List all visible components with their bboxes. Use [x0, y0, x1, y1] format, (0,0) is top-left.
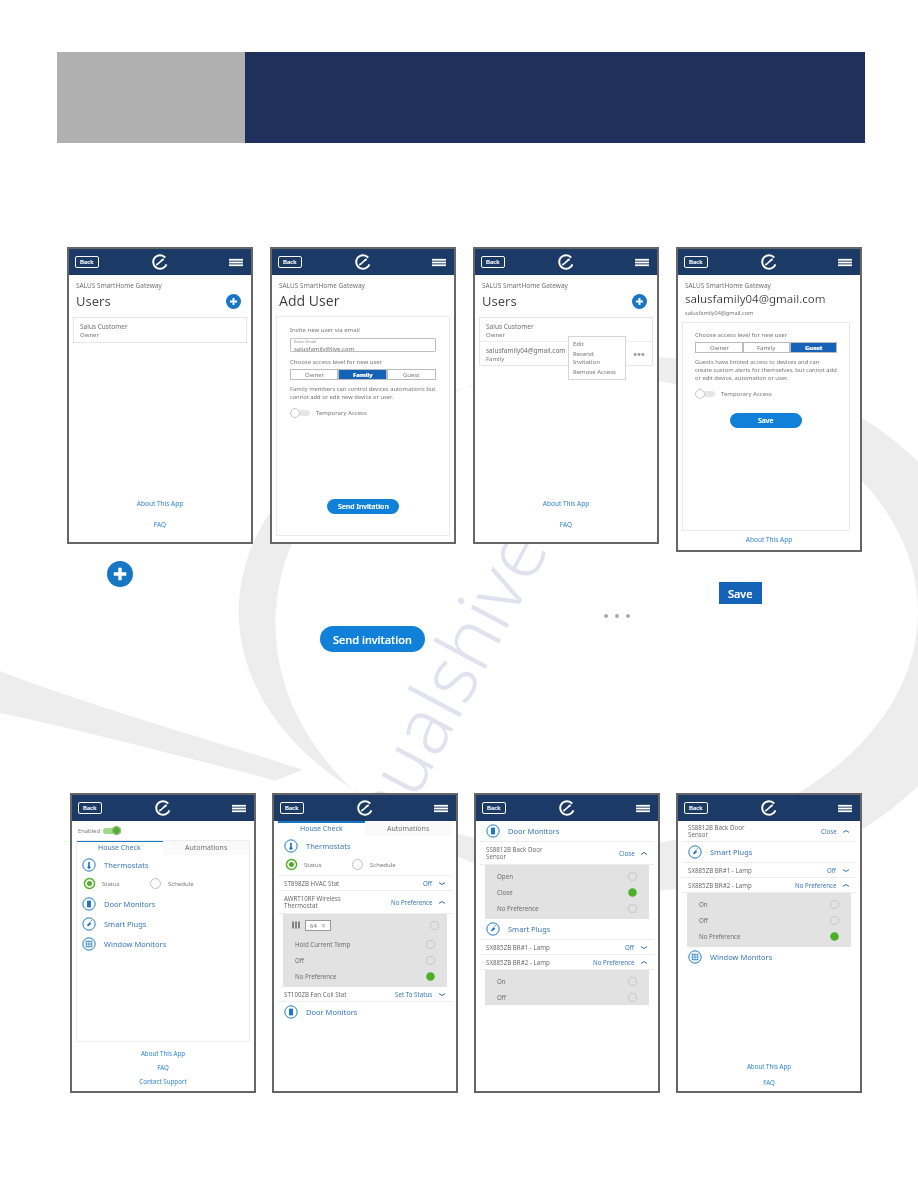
button[interactable]: Automations — [163, 840, 250, 855]
button[interactable]: Add — [107, 561, 133, 587]
button[interactable]: Back — [280, 802, 304, 814]
button[interactable]: Menu — [434, 803, 448, 814]
button[interactable] — [830, 916, 839, 925]
button[interactable]: ST898ZB HVAC Stat — [278, 876, 452, 890]
button[interactable]: Menu — [232, 803, 246, 814]
button[interactable]: Resend Invitation — [573, 349, 621, 367]
button[interactable]: Owner — [695, 342, 743, 353]
button[interactable]: Remove Access — [573, 367, 621, 377]
button[interactable]: House Check — [278, 821, 365, 836]
button[interactable]: SALUS home — [151, 253, 169, 271]
button[interactable] — [426, 956, 435, 965]
button[interactable] — [84, 878, 95, 889]
button[interactable]: About This App — [678, 534, 860, 545]
button[interactable]: House Check — [76, 840, 163, 855]
button[interactable]: Smart Plugs — [76, 914, 250, 934]
button[interactable]: More options — [633, 350, 645, 359]
button[interactable]: No Preference — [485, 900, 649, 916]
button[interactable]: No Preference — [283, 968, 447, 984]
button[interactable]: Window Monitors — [682, 947, 856, 967]
button[interactable] — [628, 993, 637, 1002]
button[interactable]: FAQ — [475, 517, 657, 532]
button[interactable]: Back — [75, 256, 99, 268]
button[interactable]: Thermostats — [278, 836, 452, 856]
button[interactable]: Hold Current Temp — [283, 936, 447, 952]
button[interactable]: Add user — [632, 294, 647, 309]
button[interactable]: Back — [78, 802, 102, 814]
button[interactable]: SS8812B Back Door Sensor — [480, 842, 654, 864]
button[interactable] — [430, 921, 439, 930]
button[interactable]: On — [485, 973, 649, 989]
button[interactable]: SALUS home — [760, 799, 778, 817]
button[interactable]: Menu — [636, 803, 650, 814]
button[interactable]: Send Invitation — [327, 499, 399, 514]
button[interactable]: SALUS home — [760, 253, 778, 271]
button[interactable]: Automations — [365, 821, 452, 836]
button[interactable]: Edit — [573, 339, 621, 349]
button[interactable]: Save — [730, 413, 802, 428]
button[interactable]: On — [687, 896, 851, 912]
button[interactable]: Send invitation — [320, 626, 425, 652]
button[interactable]: About This App — [678, 1060, 860, 1072]
button[interactable]: About This App — [72, 1046, 254, 1060]
button[interactable]: Back — [684, 802, 708, 814]
button[interactable]: Menu — [838, 257, 852, 268]
button[interactable]: SALUS home — [557, 253, 575, 271]
button[interactable]: Salus Customer — [73, 317, 247, 343]
button[interactable]: Door Monitors — [480, 821, 654, 841]
button[interactable]: Owner — [290, 369, 338, 380]
button[interactable] — [628, 904, 637, 913]
button[interactable]: Back — [481, 256, 505, 268]
button[interactable]: No Preference — [687, 928, 851, 944]
button[interactable]: Toggle — [290, 408, 310, 418]
button[interactable]: salusfamily04@gmail.com — [479, 342, 653, 366]
button[interactable]: Door Monitors — [76, 894, 250, 914]
button[interactable]: SALUS home — [356, 799, 374, 817]
button[interactable]: Salus Customer — [479, 317, 653, 341]
button[interactable]: 64 — [305, 920, 331, 931]
button[interactable]: Window Monitors — [76, 934, 250, 954]
button[interactable]: Toggle — [103, 826, 121, 835]
button[interactable]: Back — [684, 256, 708, 268]
button[interactable]: Guest — [790, 342, 837, 353]
button[interactable] — [628, 977, 637, 986]
button[interactable]: Off — [687, 912, 851, 928]
button[interactable] — [426, 940, 435, 949]
button[interactable]: Door Monitors — [278, 1002, 452, 1022]
button[interactable]: Smart Plugs — [480, 919, 654, 939]
button[interactable]: Open — [485, 868, 649, 884]
button[interactable]: Smart Plugs — [682, 842, 856, 862]
button[interactable] — [830, 900, 839, 909]
button[interactable]: Enter Email — [290, 338, 436, 352]
button[interactable]: Menu — [635, 257, 649, 268]
button[interactable]: Menu — [432, 257, 446, 268]
button[interactable]: Off — [485, 989, 649, 1005]
button[interactable]: Contact Support — [72, 1074, 254, 1088]
button[interactable]: AWRT10RF Wireless Thermostat — [278, 891, 452, 913]
button[interactable] — [426, 972, 435, 981]
button[interactable]: FAQ — [678, 1076, 860, 1088]
button[interactable]: Off — [283, 952, 447, 968]
button[interactable]: SX885ZB BR#1 - Lamp — [682, 863, 856, 877]
button[interactable]: SALUS home — [558, 799, 576, 817]
button[interactable]: Guest — [387, 369, 436, 380]
button[interactable]: SS8812B Back Door Sensor — [682, 821, 856, 841]
button[interactable]: Back — [278, 256, 302, 268]
button[interactable]: Close — [485, 884, 649, 900]
button[interactable] — [352, 859, 363, 870]
button[interactable]: Menu — [838, 803, 852, 814]
button[interactable]: SX885ZB BR#2 - Lamp — [682, 878, 856, 892]
button[interactable]: Back — [482, 802, 506, 814]
button[interactable]: Toggle — [695, 389, 715, 399]
button[interactable]: Family — [743, 342, 790, 353]
button[interactable]: SALUS home — [154, 799, 172, 817]
button[interactable]: Menu — [229, 257, 243, 268]
button[interactable]: FAQ — [72, 1060, 254, 1074]
button[interactable]: Family — [338, 369, 387, 380]
button[interactable] — [628, 888, 637, 897]
button[interactable] — [150, 878, 161, 889]
button[interactable]: Save — [719, 582, 762, 604]
button[interactable]: SALUS home — [354, 253, 372, 271]
button[interactable] — [286, 859, 297, 870]
button[interactable]: SX885ZB BR#2 - Lamp — [480, 955, 654, 969]
